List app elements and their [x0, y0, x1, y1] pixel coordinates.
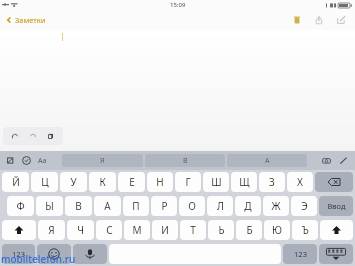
staticText: Н — [156, 175, 164, 189]
button[interactable]: Микрофон — [73, 244, 107, 264]
staticText: Ю — [272, 223, 282, 237]
staticText: Я — [48, 223, 55, 237]
button[interactable]: Б — [236, 220, 262, 240]
button[interactable]: Ш — [203, 172, 229, 192]
staticText: Ф — [16, 199, 25, 213]
staticText: Э — [301, 199, 308, 213]
button[interactable]: У — [60, 172, 87, 192]
button[interactable]: Удалить символ — [315, 172, 353, 192]
staticText: 123 — [294, 249, 307, 259]
button[interactable]: Л — [207, 196, 233, 216]
button[interactable]: Я — [38, 220, 65, 240]
staticText: Д — [244, 199, 252, 213]
button[interactable]: Готово — [20, 154, 33, 167]
staticText: Г — [185, 175, 191, 189]
staticText: Ввод — [327, 201, 346, 211]
button[interactable]: П — [123, 196, 149, 216]
button[interactable]: З — [259, 172, 285, 192]
staticText: Заметки — [15, 15, 46, 25]
button[interactable]: Вернуть — [27, 130, 39, 142]
button[interactable]: О — [179, 196, 205, 216]
button[interactable]: Поделиться — [311, 12, 327, 28]
staticText: М — [132, 223, 142, 237]
button[interactable]: Shift — [2, 220, 36, 240]
staticText: Т — [190, 223, 196, 237]
staticText: Б — [246, 223, 253, 237]
staticText: Р — [161, 199, 168, 213]
staticText: Ж — [271, 199, 281, 213]
staticText: У — [70, 175, 77, 189]
staticText: З — [269, 175, 275, 189]
button[interactable]: Ввод — [319, 196, 353, 216]
button[interactable]: Заметки — [5, 15, 46, 25]
staticText: И — [161, 223, 169, 237]
staticText: К — [99, 175, 106, 189]
button[interactable]: Я — [62, 154, 143, 167]
button[interactable]: Формат — [4, 154, 17, 167]
staticText: Ц — [41, 175, 49, 189]
staticText: Щ — [239, 175, 250, 189]
button[interactable]: Н — [147, 172, 173, 192]
staticText: Я — [100, 156, 105, 166]
staticText: 123 — [12, 249, 25, 259]
button[interactable]: Ъ — [292, 220, 318, 240]
button[interactable]: Ж — [263, 196, 289, 216]
button[interactable]: Вставить — [45, 130, 57, 142]
staticText: А — [104, 199, 111, 213]
staticText: 15:09 — [170, 1, 186, 9]
button[interactable]: Эмодзи — [37, 244, 71, 264]
staticText: С — [106, 223, 113, 237]
staticText: Aa — [38, 156, 47, 166]
button[interactable]: Э — [291, 196, 317, 216]
staticText: П — [132, 199, 140, 213]
button[interactable]: Новая заметка — [333, 12, 349, 28]
staticText: Ч — [77, 223, 84, 237]
button[interactable]: Д — [235, 196, 261, 216]
staticText: Х — [297, 175, 303, 189]
staticText: Й — [12, 175, 20, 189]
button[interactable]: Shift — [320, 220, 353, 240]
button[interactable]: В — [65, 196, 92, 216]
button[interactable]: Т — [180, 220, 206, 240]
button[interactable]: Рисование — [337, 154, 350, 167]
staticText: Ъ — [302, 223, 309, 237]
button[interactable]: Ю — [264, 220, 290, 240]
button[interactable]: А — [227, 154, 307, 167]
staticText: Л — [217, 199, 224, 213]
button[interactable]: К — [89, 172, 116, 192]
button[interactable]: Ь — [208, 220, 234, 240]
staticText: А — [265, 156, 270, 166]
button[interactable]: Ф — [7, 196, 34, 216]
button[interactable]: Г — [175, 172, 201, 192]
button[interactable]: Щ — [231, 172, 257, 192]
staticText: Ь — [218, 223, 225, 237]
button[interactable]: Ц — [31, 172, 58, 192]
button[interactable]: И — [152, 220, 178, 240]
button[interactable]: 123 — [2, 244, 35, 264]
button[interactable]: Камера — [320, 154, 333, 167]
button[interactable]: Х — [287, 172, 313, 192]
staticText: О — [188, 199, 196, 213]
button[interactable]: М — [124, 220, 150, 240]
button[interactable]: С — [96, 220, 122, 240]
staticText: В — [75, 199, 82, 213]
button[interactable]: Е — [118, 172, 145, 192]
button[interactable]: Удалить — [289, 12, 305, 28]
staticText: mobiltelefon.ru — [1, 252, 76, 266]
button[interactable]: Й — [2, 172, 29, 192]
staticText: Ы — [45, 199, 54, 213]
staticText: Е — [129, 175, 135, 189]
button[interactable]: А — [94, 196, 121, 216]
button[interactable]: В — [145, 154, 225, 167]
button[interactable]: Aa — [36, 154, 49, 167]
staticText: Ш — [211, 175, 222, 189]
button[interactable]: Отменить — [9, 130, 21, 142]
button[interactable]: 123 — [283, 244, 317, 264]
button[interactable]: Скрыть клавиатуру — [319, 244, 353, 264]
staticText: В — [183, 156, 188, 166]
button[interactable]: Р — [151, 196, 177, 216]
button[interactable]: Ч — [67, 220, 94, 240]
button[interactable]: Ы — [36, 196, 63, 216]
